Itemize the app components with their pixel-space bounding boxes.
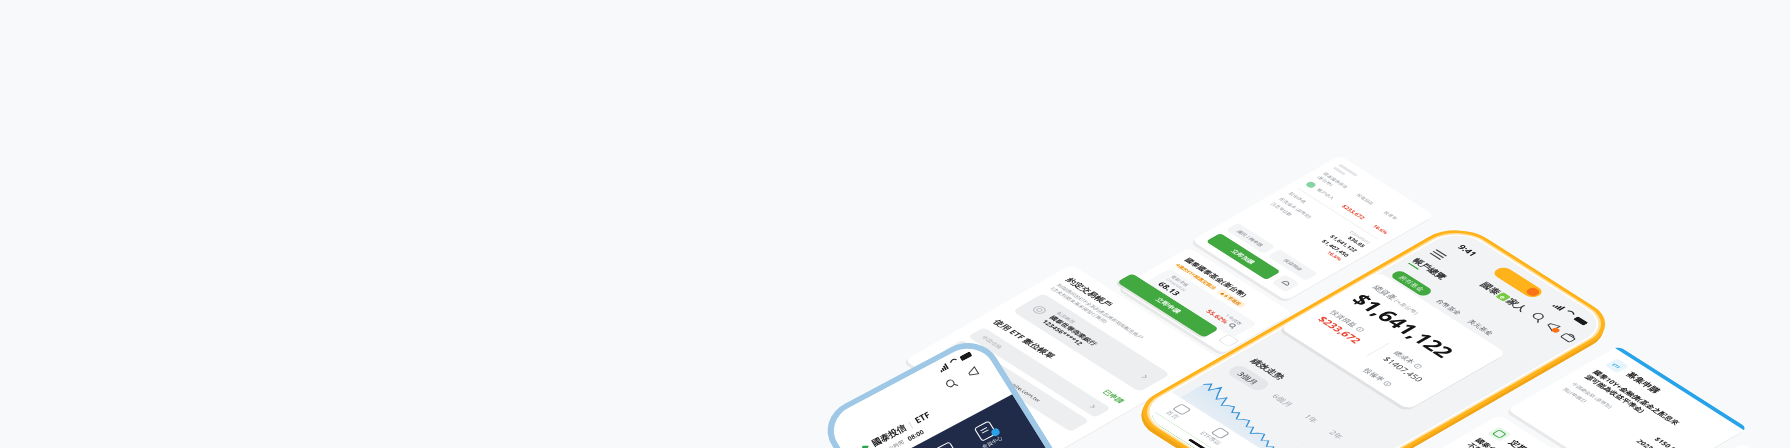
staticText: $1,407,450 (1320, 238, 1352, 258)
staticText: 總資產 (1371, 284, 1399, 301)
staticText: xiaoshu@cathaysite.com.tw (973, 359, 1043, 403)
staticText: 123456****12 (1040, 318, 1085, 347)
staticText: D304/09/22 (1349, 230, 1372, 245)
button[interactable]: 配息帳戶 (932, 441, 964, 448)
staticText: 2年 (1327, 428, 1347, 441)
button[interactable]: 立即申購 (1116, 273, 1220, 338)
staticText: 國泰世華商業銀行 (1048, 314, 1099, 347)
staticText: 投資申購 (1202, 447, 1245, 448)
staticText: 國泰 (1477, 280, 1504, 296)
staticText: 立即申購 (1153, 296, 1182, 314)
staticText: (≈新台幣) (1391, 297, 1421, 316)
staticText: 使用 ETF 數位帳單 (990, 318, 1058, 360)
staticText: 1年 (1302, 412, 1322, 425)
staticText: (含未到期未滿未滿發行費用) (1049, 286, 1110, 325)
button[interactable]: 3個月 (1235, 370, 1262, 386)
staticText: 國泰台灣高股息基金(新台幣) (1473, 437, 1559, 448)
staticText: 募集申購 (1623, 370, 1663, 395)
staticText: 9:41 (1455, 243, 1480, 258)
button[interactable]: Search (943, 376, 959, 391)
staticText: 16.6% (1325, 250, 1344, 262)
staticText: 即時登台時間 (873, 439, 905, 448)
staticText: 立即加購 (1229, 248, 1256, 265)
staticText: | (905, 418, 915, 430)
staticText: 到期贖回的ETF全系列產品將即期期配息帳戶 (1055, 283, 1145, 340)
button[interactable]: Search (1527, 310, 1549, 324)
staticText: ETF (912, 408, 933, 426)
staticText: ◆ 6 乎選股 (1219, 291, 1243, 306)
staticText: 家人 (1503, 297, 1530, 313)
staticText: Email (957, 348, 975, 359)
staticText: 1 年績效 (1224, 313, 1244, 325)
staticText: $150,000 (1652, 435, 1686, 448)
button[interactable]: 2年 (1321, 425, 1353, 444)
button[interactable]: Alerts (1271, 274, 1300, 292)
staticText: 股份淨值 (1287, 191, 1308, 204)
staticText: 已申請 (1101, 389, 1126, 404)
button[interactable]: Notifications (966, 364, 982, 379)
staticText: 6個月 (1270, 392, 1297, 409)
button[interactable]: Cart (1558, 330, 1580, 344)
staticText: 16.6% (1371, 224, 1390, 235)
staticText: 申請信箱 (980, 335, 1004, 350)
staticText: 約定交易帳戶 (1063, 276, 1114, 308)
staticText: 2023/09/25 (1634, 438, 1675, 448)
button[interactable]: 所有基金 (1397, 274, 1426, 292)
staticText: 最新淨值 (1169, 275, 1190, 287)
staticText: 55.62% (1204, 308, 1231, 325)
staticText: 注意單位數 (1269, 202, 1294, 217)
staticText: 定期定額 (1506, 438, 1545, 448)
staticText: 不配息A (1465, 441, 1496, 448)
button[interactable]: 美元基金 (1462, 316, 1499, 339)
staticText: 帳戶總覽 (1410, 256, 1449, 281)
staticText: e (1497, 293, 1509, 300)
button[interactable]: Notifications (1542, 320, 1565, 334)
staticText: $233,672 (1340, 203, 1367, 220)
staticText: 源可能為收益平準金) (1583, 373, 1648, 414)
button[interactable]: 投資申購 (1146, 409, 1305, 448)
button[interactable]: 配息帳號 (1012, 293, 1171, 392)
staticText: 所有基金 (1397, 274, 1426, 292)
staticText: 會員中心 (981, 435, 1004, 448)
button[interactable]: 會員中心 (971, 420, 1003, 448)
staticText: 帳戶存入 (1315, 188, 1346, 207)
staticText: ETF (1611, 362, 1623, 369)
staticText: 68.13 (1155, 280, 1183, 297)
button[interactable]: 贖回 / 轉申購 (1225, 223, 1276, 254)
button[interactable]: Menu (1427, 247, 1450, 262)
button[interactable]: 1年 (1296, 409, 1328, 428)
button[interactable]: ETF專區 (1188, 418, 1243, 448)
staticText: 台幣基金 (1434, 298, 1463, 316)
button[interactable]: 首頁 (1150, 394, 1205, 428)
button[interactable]: Compare (1217, 334, 1240, 347)
staticText: 首頁 (1164, 409, 1181, 420)
button[interactable]: 6個月 (1264, 388, 1303, 412)
staticText: 總成本 (1392, 349, 1417, 365)
staticText: 4億的ETF精選定額法 (1174, 263, 1218, 291)
button[interactable]: 基金 (1225, 443, 1281, 448)
staticText: ETF專區 (1197, 430, 1224, 447)
button[interactable]: 台幣基金 (1430, 295, 1467, 319)
staticText: 績效走勢 (1248, 357, 1287, 381)
staticText: 國泰10Y+金融債(基金之配息來 (1591, 368, 1683, 426)
staticText: 投報率 (1361, 367, 1387, 383)
staticText: D304/09/22 (1165, 278, 1188, 292)
staticText: 08:00 (906, 427, 926, 443)
button[interactable]: 申請信箱 (967, 327, 1111, 418)
staticText: 贖回 / 轉申購 (1235, 229, 1265, 248)
staticText: 投資成本 (原幣別) (1278, 196, 1314, 219)
staticText: 美元基金 (1466, 318, 1495, 336)
staticText: 國泰國泰基金(新台幣) (1183, 256, 1250, 299)
staticText: (新台幣) (1316, 175, 1335, 187)
staticText: $1407,450 (1380, 355, 1427, 384)
button[interactable]: 投資明細 (1267, 249, 1318, 281)
staticText: 投資明細 (1282, 258, 1303, 272)
staticText: $1,641,122 (1345, 289, 1462, 362)
staticText: 預計申購日 (1562, 387, 1589, 403)
staticText: $1,641,122 (1328, 234, 1360, 253)
staticText: 投資損益 (1328, 309, 1359, 328)
staticText: 國泰國泰基金 (1321, 172, 1350, 190)
button[interactable]: 立即加購 (1205, 233, 1281, 280)
staticText: $36.85 (1346, 235, 1368, 249)
staticText: 投報率 (1382, 210, 1406, 226)
